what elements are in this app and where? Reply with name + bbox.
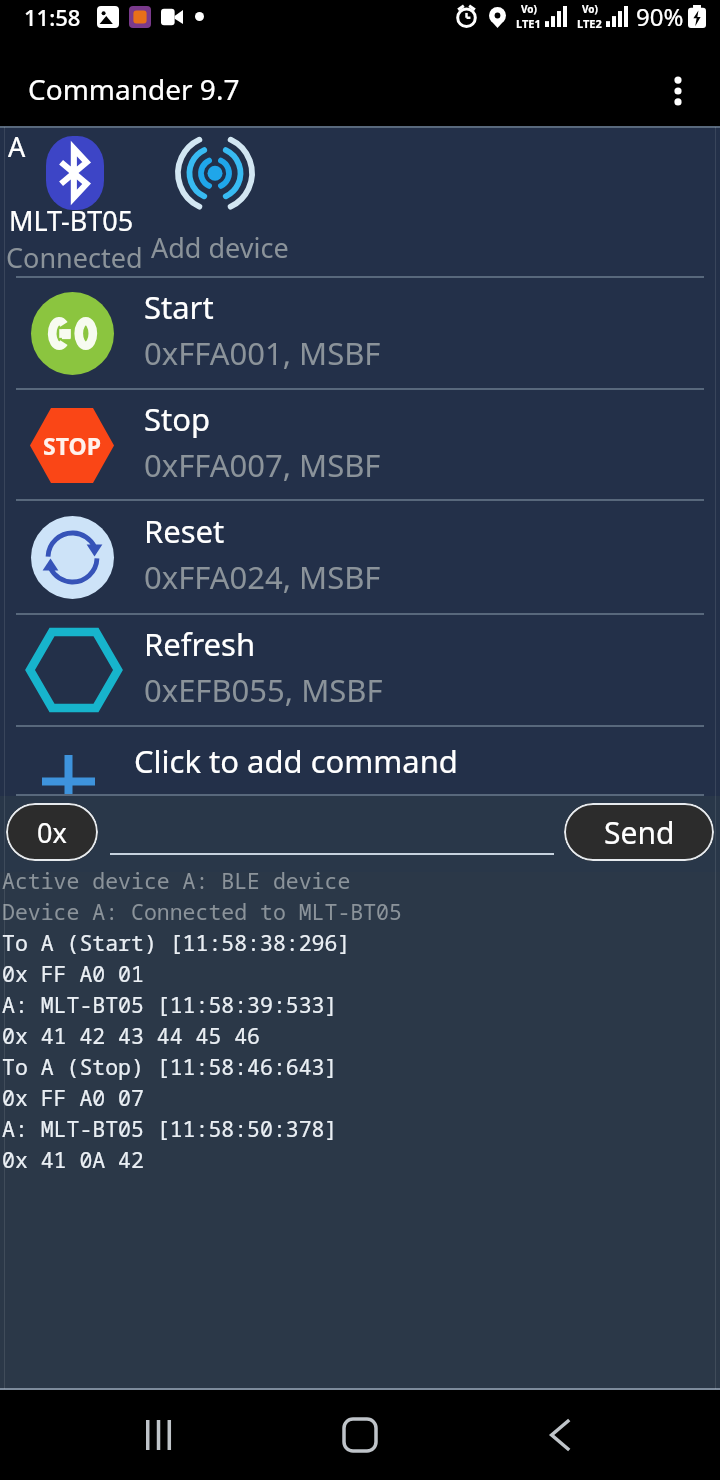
staticText: Commander 9.7 [28, 70, 240, 108]
button[interactable]: More options [650, 63, 706, 119]
staticText: 0xFFA024, MSBF [144, 556, 381, 598]
staticText: 0x 41 42 43 44 45 46 [2, 1021, 261, 1050]
staticText: 0x [37, 814, 67, 851]
staticText: Start [144, 286, 214, 328]
button[interactable]: Click to add command [0, 727, 720, 794]
button[interactable]: Send [564, 803, 714, 861]
staticText: 0xFFA001, MSBF [144, 332, 381, 374]
staticText: 0xFFA007, MSBF [144, 444, 381, 486]
staticText: Add device [151, 229, 289, 266]
staticText: To A (Start) [11:58:38:296] [2, 928, 351, 957]
staticText: Device A: Connected to MLT-BT05 [2, 897, 402, 926]
staticText: Reset [144, 510, 225, 552]
staticText: 0x FF A0 07 [2, 1083, 144, 1112]
staticText: Vo) [521, 2, 537, 16]
button[interactable]: Home [320, 1395, 400, 1475]
staticText: Connected [6, 239, 143, 276]
button[interactable]: MLT-BT05 [6, 126, 146, 276]
button[interactable]: 0x [6, 803, 98, 861]
button[interactable]: Recents [120, 1395, 200, 1475]
staticText: LTE2 [577, 16, 602, 31]
staticText: LTE1 [516, 16, 541, 31]
staticText: Send [604, 812, 675, 853]
button[interactable]: Back [520, 1395, 600, 1475]
staticText: 90% [636, 0, 684, 33]
staticText: MLT-BT05 [9, 202, 134, 239]
staticText: Refresh [144, 623, 256, 665]
button[interactable]: Start [0, 278, 720, 388]
staticText: 11:58 [24, 2, 81, 32]
staticText: Vo) [582, 2, 598, 16]
staticText: 0x 41 0A 42 [2, 1145, 144, 1174]
staticText: Stop [144, 398, 211, 440]
staticText: A [8, 128, 26, 165]
staticText: STOP [43, 430, 101, 461]
button[interactable]: STOP [0, 390, 720, 499]
button[interactable]: Reset [0, 501, 720, 613]
staticText: 0x FF A0 01 [2, 959, 144, 988]
button[interactable]: Refresh [0, 615, 720, 725]
staticText: Click to add command [134, 740, 458, 782]
staticText: A: MLT-BT05 [11:58:50:378] [2, 1114, 338, 1143]
staticText: Active device A: BLE device [2, 866, 351, 895]
staticText: To A (Stop) [11:58:46:643] [2, 1052, 338, 1081]
staticText: A: MLT-BT05 [11:58:39:533] [2, 990, 338, 1019]
button[interactable]: Add device [144, 126, 344, 276]
staticText: 0xEFB055, MSBF [144, 669, 383, 711]
